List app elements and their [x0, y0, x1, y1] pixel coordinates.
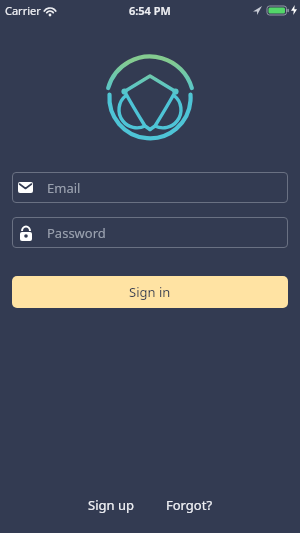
staticText: Password	[47, 224, 106, 242]
staticText: Forgot?	[166, 496, 213, 514]
staticText: Email	[47, 179, 81, 197]
button[interactable]: Forgot?	[154, 494, 225, 516]
staticText: Sign up	[88, 496, 134, 514]
button[interactable]: Sign in	[12, 276, 288, 308]
button[interactable]: Password	[12, 217, 288, 248]
button[interactable]: Sign up	[76, 494, 146, 516]
button[interactable]: Email	[12, 172, 288, 203]
staticText: 6:54 PM	[129, 3, 171, 18]
staticText: Carrier	[5, 3, 41, 18]
staticText: Sign in	[129, 283, 171, 301]
